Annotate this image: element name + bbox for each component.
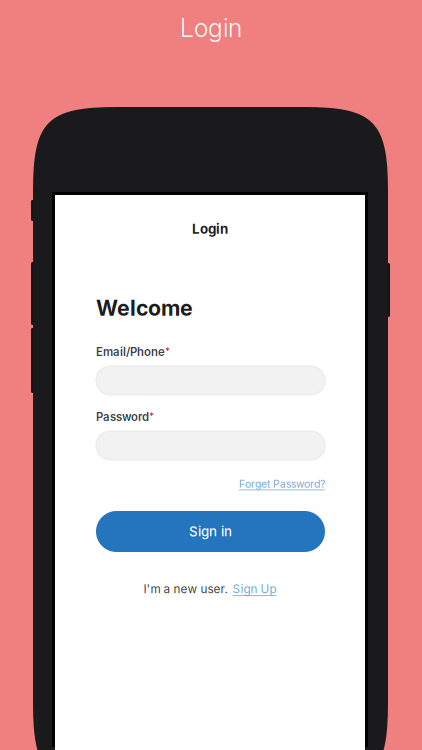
staticText: Password xyxy=(96,410,149,424)
staticText: Login xyxy=(180,13,242,43)
button[interactable]: Sign in xyxy=(96,511,325,552)
staticText: Welcome xyxy=(96,295,193,321)
button[interactable]: Login xyxy=(55,220,365,238)
button[interactable]: Forget Password? xyxy=(96,477,325,491)
staticText: I'm a new user. xyxy=(143,582,227,596)
staticText: Sign in xyxy=(189,523,232,539)
staticText: Forget Password? xyxy=(239,478,325,490)
staticText: * xyxy=(165,345,170,356)
staticText: * xyxy=(149,410,154,421)
button[interactable]: Sign Up xyxy=(232,582,276,596)
staticText: Login xyxy=(192,221,228,237)
staticText: Sign Up xyxy=(232,582,276,596)
staticText: Email/Phone xyxy=(96,345,165,359)
